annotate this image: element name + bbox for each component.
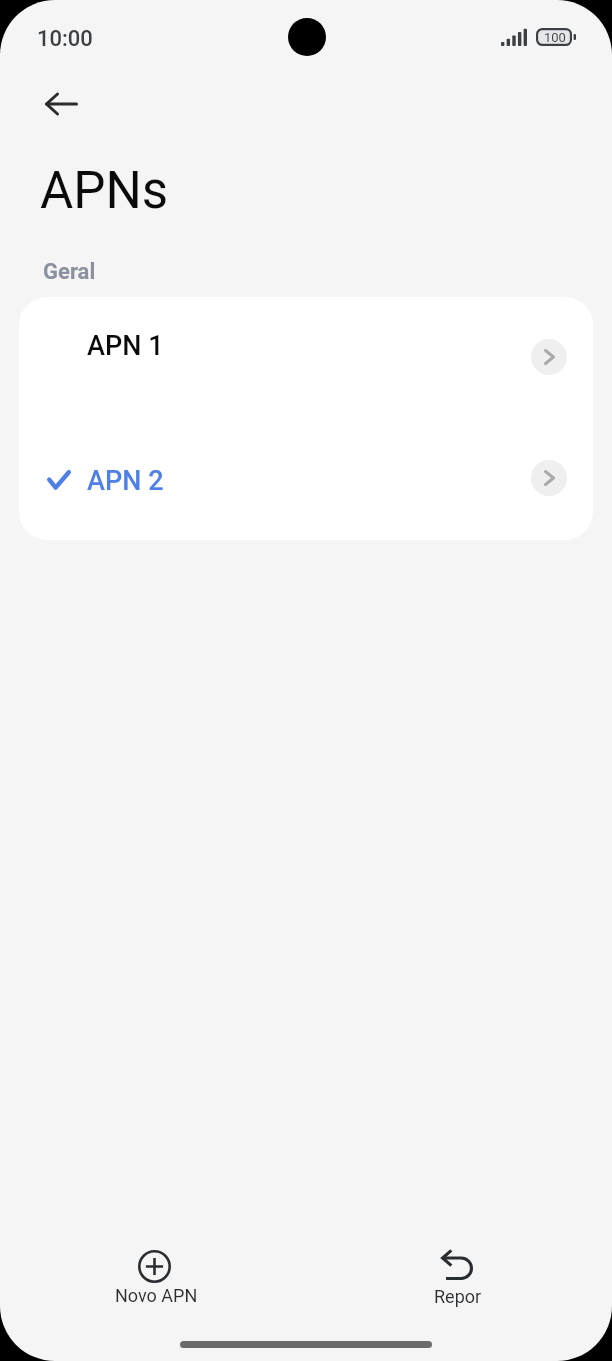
button[interactable]: APN 1 [19, 297, 593, 419]
staticText: Novo APN [115, 1285, 198, 1306]
button[interactable]: Open APN 2 [531, 460, 567, 496]
button[interactable]: Back [27, 72, 95, 136]
button[interactable]: Repor [387, 1242, 527, 1318]
staticText: APN 2 [87, 465, 164, 497]
staticText: 100 [544, 30, 566, 45]
staticText: Geral [43, 259, 96, 285]
staticText: APNs [40, 161, 169, 221]
button[interactable]: Open APN 1 [531, 339, 567, 375]
button[interactable]: APN 2 [19, 419, 593, 540]
staticText: 10:00 [37, 26, 93, 52]
staticText: Repor [434, 1286, 482, 1307]
button[interactable]: Novo APN [85, 1242, 225, 1318]
staticText: APN 1 [87, 330, 164, 362]
